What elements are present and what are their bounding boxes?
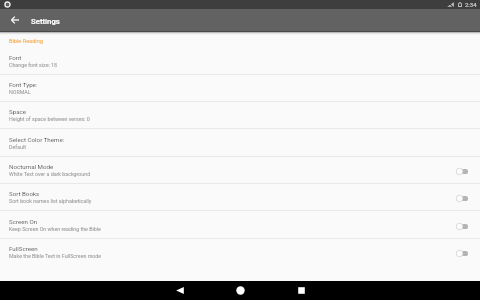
button[interactable]: Toggle	[452, 164, 472, 178]
button[interactable]: Select Color Theme:	[0, 130, 480, 157]
staticText: NORMAL	[9, 89, 31, 95]
button[interactable]: Screen On	[0, 212, 480, 239]
staticText: Keep Screen On when reading the Bible	[9, 226, 101, 232]
staticText: Space	[9, 108, 27, 115]
button[interactable]: Font Type:	[0, 75, 480, 102]
staticText: FullScreen	[9, 245, 38, 252]
staticText: 2:34	[465, 1, 477, 8]
button[interactable]: Home	[210, 281, 271, 300]
button[interactable]: Back	[9, 14, 21, 26]
staticText: Height of space between verses: 0	[9, 116, 90, 122]
staticText: Screen On	[9, 218, 38, 225]
staticText: Font Type:	[9, 81, 38, 88]
staticText: Bible Reading	[9, 38, 43, 45]
staticText: Font	[9, 54, 22, 61]
staticText: Sort Books	[9, 190, 40, 197]
button[interactable]: Font	[0, 48, 480, 75]
staticText: Default	[9, 144, 26, 150]
button[interactable]: Nocturnal Mode	[0, 157, 480, 184]
button[interactable]: FullScreen	[0, 239, 480, 266]
staticText: Nocturnal Mode	[9, 163, 54, 170]
button[interactable]: Recents	[271, 281, 332, 300]
staticText: White Text over a dark background	[9, 171, 91, 177]
button[interactable]: Sort Books	[0, 184, 480, 211]
staticText: Sort book names list alphabetically	[9, 198, 92, 204]
staticText: Change font size: 18	[9, 62, 58, 68]
button[interactable]: Toggle	[452, 191, 472, 205]
staticText: Settings	[31, 17, 60, 26]
staticText: Select Color Theme:	[9, 136, 65, 143]
button[interactable]: Toggle	[452, 246, 472, 260]
staticText: Make the Bible Text in FullScreen mode	[9, 253, 102, 259]
button[interactable]: Space	[0, 102, 480, 129]
button[interactable]: Toggle	[452, 219, 472, 233]
button[interactable]: Back	[149, 281, 210, 300]
